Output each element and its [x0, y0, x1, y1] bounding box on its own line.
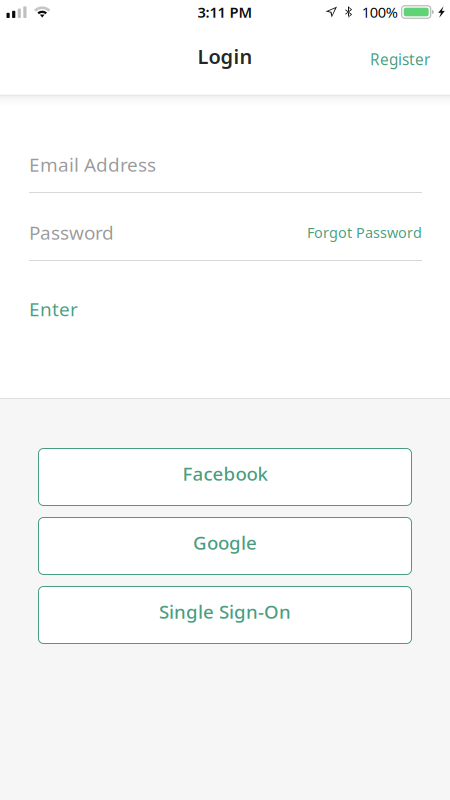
- staticText: Enter: [29, 296, 78, 322]
- staticText: Google: [193, 530, 257, 555]
- staticText: 3:11 PM: [197, 2, 252, 22]
- button[interactable]: Register: [356, 40, 450, 79]
- staticText: Login: [197, 43, 252, 70]
- button[interactable]: Google: [38, 517, 412, 575]
- staticText: Password: [29, 220, 114, 245]
- button[interactable]: Forgot Password: [295, 215, 422, 250]
- staticText: Forgot Password: [307, 223, 422, 242]
- staticText: Email Address: [29, 152, 156, 177]
- staticText: 100%: [362, 2, 398, 22]
- button[interactable]: Single Sign-On: [38, 586, 412, 644]
- staticText: Single Sign-On: [159, 599, 291, 624]
- staticText: Facebook: [182, 461, 267, 486]
- button[interactable]: Enter: [29, 284, 92, 334]
- staticText: Register: [370, 49, 430, 70]
- button[interactable]: Facebook: [38, 448, 412, 506]
